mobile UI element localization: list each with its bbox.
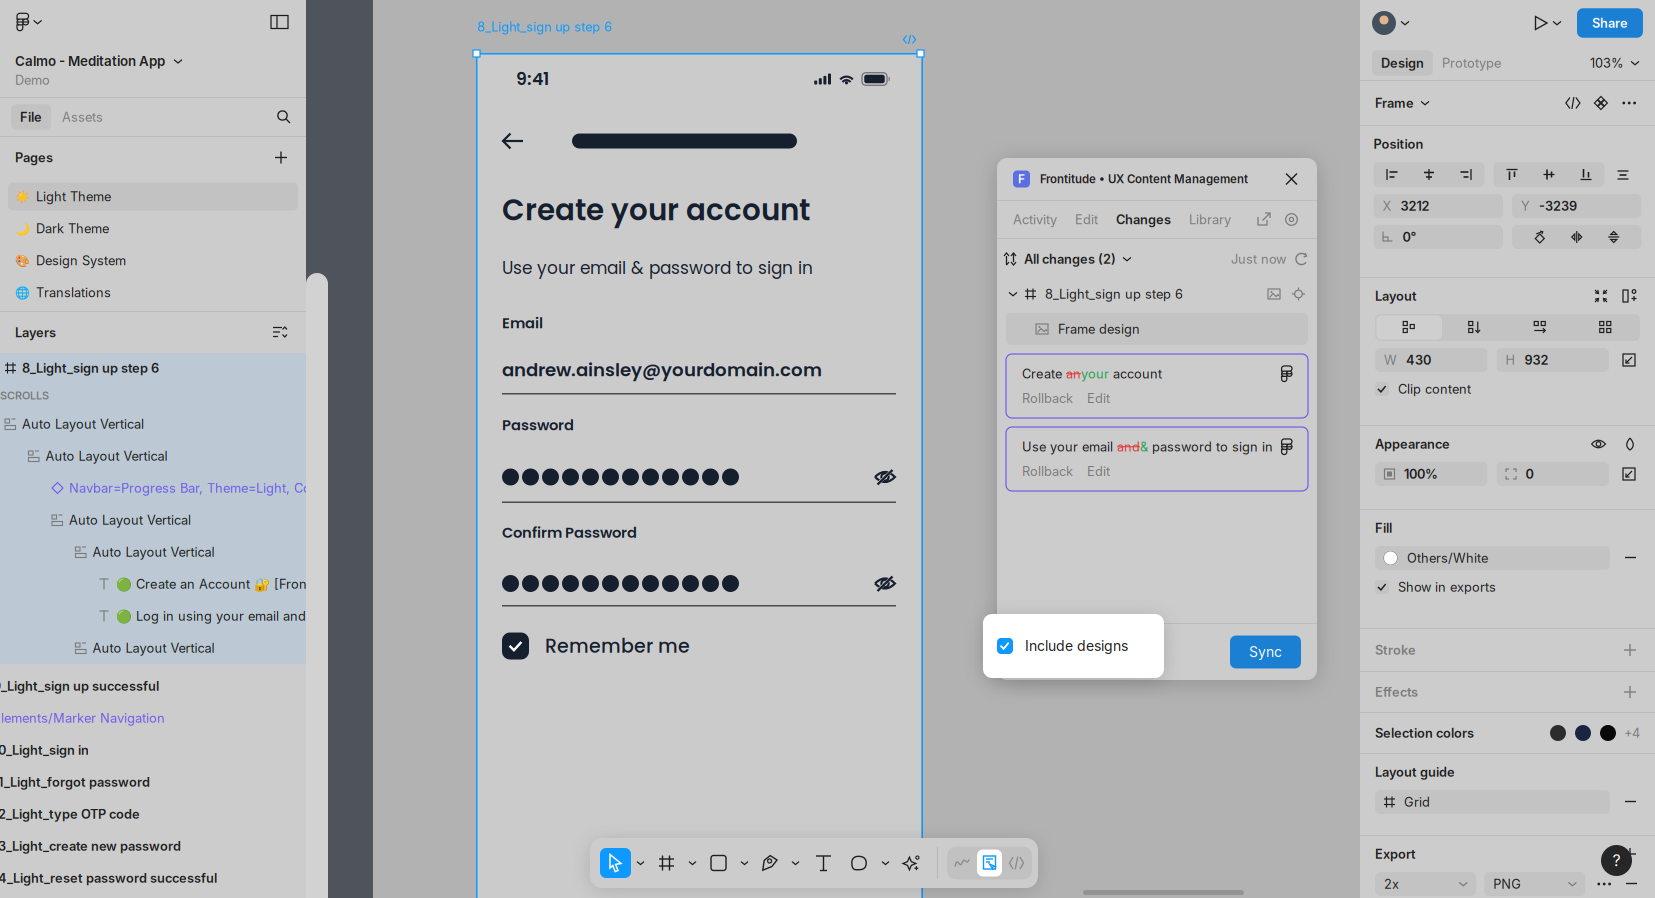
button[interactable]: Help and resources	[1601, 845, 1632, 876]
button[interactable]: 🌙	[8, 214, 298, 242]
button[interactable]: Copy as code	[1562, 94, 1583, 112]
button[interactable]: Add auto layout	[1620, 286, 1640, 305]
button[interactable]: Resize to fit	[1592, 287, 1610, 305]
button[interactable]: Rollback	[1022, 464, 1073, 479]
button[interactable]: Align 0	[1373, 162, 1410, 187]
button[interactable]: Refresh	[1295, 252, 1308, 265]
button[interactable]: Calmo - Meditation App	[15, 53, 291, 69]
button[interactable]: Align 6	[1604, 162, 1641, 187]
button[interactable]: Add page	[271, 147, 291, 167]
button[interactable]: Activity	[1013, 212, 1057, 227]
button[interactable]: 2x	[1375, 872, 1476, 896]
button[interactable]: Align 2	[1447, 162, 1484, 187]
button[interactable]: Elements/Marker Navigation	[0, 702, 306, 734]
button[interactable]: 8_Light_sign up step 6	[0, 353, 306, 383]
button[interactable]: Rollback	[1022, 391, 1073, 406]
button[interactable]: Shape tool	[702, 847, 735, 878]
button[interactable]: Share	[1577, 8, 1643, 38]
button[interactable]: Edit	[1075, 212, 1098, 227]
button[interactable]: Auto Layout Vertical	[0, 440, 306, 472]
button[interactable]: Design	[1372, 50, 1433, 76]
button[interactable]: Present	[1531, 12, 1565, 34]
button[interactable]: Align 1	[1410, 162, 1447, 187]
button[interactable]: Plugins and widgets	[977, 849, 1002, 876]
button[interactable]: Collapse layers	[269, 323, 291, 342]
button[interactable]: View code	[903, 35, 916, 44]
button[interactable]: Transform 0	[1521, 225, 1558, 249]
button[interactable]: 🌐	[8, 278, 298, 306]
button[interactable]: Layout mode 0	[1376, 315, 1442, 339]
button[interactable]: Remove fill	[1621, 553, 1640, 563]
button[interactable]: Comment options	[876, 849, 895, 876]
button[interactable]: Move tool options	[631, 849, 650, 876]
button[interactable]: Align 5	[1567, 162, 1604, 187]
button[interactable]: Zoom to frame	[1289, 284, 1308, 303]
button[interactable]: Edit	[1087, 391, 1110, 406]
button[interactable]: 13_Light_create new password	[0, 830, 306, 862]
button[interactable]: Toggle visibility	[1588, 435, 1609, 453]
button[interactable]: Constraints	[1618, 349, 1640, 371]
button[interactable]: 🎨	[8, 246, 298, 274]
button[interactable]: Layout mode 2	[1507, 315, 1573, 339]
button[interactable]: Add export	[1620, 844, 1640, 864]
button[interactable]: Layout mode 3	[1573, 315, 1638, 339]
button[interactable]: Close plugin	[1282, 169, 1301, 188]
button[interactable]: Text tool	[805, 847, 842, 878]
button[interactable]: Remove export	[1623, 880, 1640, 888]
button[interactable]: Align 3	[1493, 162, 1530, 187]
button[interactable]: Frame tool options	[683, 849, 702, 876]
button[interactable]: Remove layout guide	[1621, 797, 1640, 807]
button[interactable]: 12_Light_type OTP code	[0, 798, 306, 830]
button[interactable]: Toggle UI	[267, 11, 292, 32]
button[interactable]: 11_Light_forgot password	[0, 766, 306, 798]
button[interactable]: Collapse group	[1006, 287, 1020, 301]
button[interactable]: Comment tool	[842, 847, 876, 878]
button[interactable]: Open in app	[1255, 210, 1274, 229]
button[interactable]: Add effect	[1620, 682, 1640, 702]
button[interactable]: Show password	[874, 466, 896, 487]
button[interactable]: Navbar=Progress Bar, Theme=Light, Compon	[0, 472, 306, 504]
button[interactable]: Auto Layout Vertical	[0, 504, 306, 536]
button[interactable]: 🟢 Log in using your email and pass	[0, 600, 306, 632]
button[interactable]: Align 4	[1530, 162, 1567, 187]
button[interactable]: Prototype	[1433, 50, 1510, 76]
button[interactable]: Add stroke	[1620, 640, 1640, 660]
button[interactable]: Transform 2	[1595, 225, 1632, 249]
button[interactable]: Auto Layout Vertical	[0, 408, 306, 440]
button[interactable]: Move tool	[600, 848, 631, 878]
button[interactable]: Dev mode	[1003, 848, 1030, 877]
button[interactable]: Layout mode 1	[1442, 315, 1507, 339]
button[interactable]: Components	[1591, 93, 1610, 112]
button[interactable]: Pen tool options	[786, 849, 805, 876]
button[interactable]: Edit	[1087, 464, 1110, 479]
button[interactable]: Shape tool options	[735, 849, 754, 876]
button[interactable]: Frame	[1375, 95, 1429, 111]
button[interactable]: Assets	[53, 104, 112, 130]
button[interactable]: Pen tool	[754, 848, 786, 878]
button[interactable]: Show image	[1265, 285, 1284, 302]
button[interactable]: PNG	[1484, 872, 1585, 896]
button[interactable]: Plugin settings	[1282, 210, 1301, 229]
button[interactable]: Changes	[1116, 212, 1171, 227]
button[interactable]: 14_Light_reset password successful	[0, 862, 306, 894]
button[interactable]: Search	[273, 106, 295, 128]
button[interactable]: Draw tool	[949, 848, 976, 877]
button[interactable]: Back	[503, 126, 524, 156]
button[interactable]: 9_Light_sign up successful	[0, 670, 306, 702]
button[interactable]: Show confirm password	[874, 573, 896, 594]
button[interactable]: Frame tool	[650, 847, 683, 878]
button[interactable]: Actions	[895, 848, 928, 878]
button[interactable]: Auto Layout Vertical	[0, 536, 306, 568]
button[interactable]: Auto Layout Vertical	[0, 632, 306, 664]
button[interactable]: Remember me	[502, 628, 896, 663]
button[interactable]: Export options	[1593, 879, 1615, 889]
button[interactable]: Zoom	[1586, 51, 1643, 75]
button[interactable]: ☀️	[8, 182, 298, 210]
button[interactable]: Blend mode	[1621, 434, 1640, 453]
button[interactable]: More options	[1618, 98, 1640, 108]
button[interactable]: 10_Light_sign in	[0, 734, 306, 766]
button[interactable]: Expand	[1618, 463, 1640, 485]
button[interactable]: All changes (2)	[1006, 251, 1131, 267]
button[interactable]: 🟢 Create an Account 🔐 [Frontitud	[0, 568, 306, 600]
button[interactable]: Sync	[1230, 635, 1301, 668]
